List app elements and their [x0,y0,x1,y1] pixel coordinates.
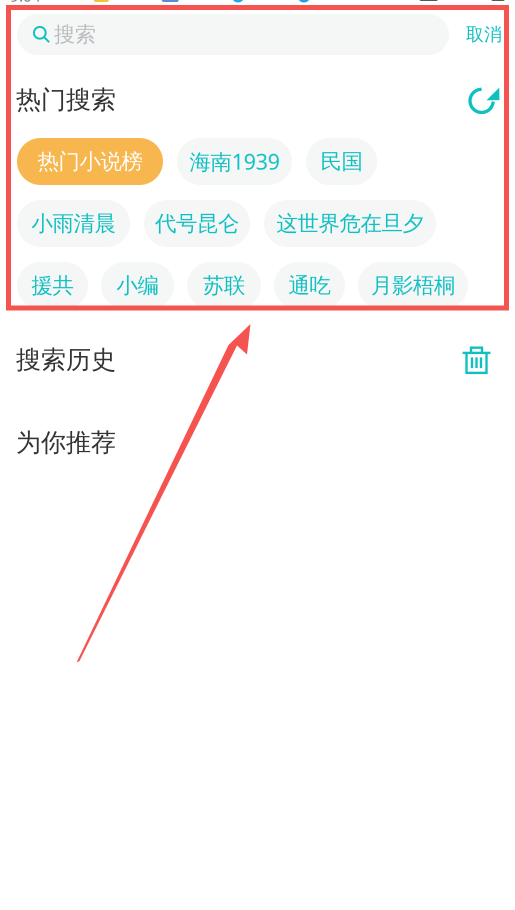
staticText: 为你推荐 [16,427,116,458]
staticText: 取消 [466,23,502,46]
button[interactable]: 这世界危在旦夕 [264,200,436,247]
button[interactable]: 通吃 [274,262,345,309]
staticText: 热门搜索 [16,84,116,116]
staticText: 小雨清晨 [31,210,115,237]
button[interactable]: 海南1939 [177,138,292,185]
staticText: 9:04 [10,0,41,6]
button[interactable]: 小编 [101,262,174,309]
staticText: 代号昆仑 [155,210,239,237]
staticText: 海南1939 [189,147,279,176]
staticText: 搜索 [54,21,96,48]
button[interactable]: 代号昆仑 [144,200,250,247]
staticText: 通吃 [288,272,330,299]
staticText: 月影梧桐 [371,272,455,299]
staticText: 苏联 [203,272,245,299]
button[interactable]: 民国 [306,138,377,185]
staticText: 这世界危在旦夕 [276,210,423,237]
button[interactable]: 小雨清晨 [17,200,130,247]
staticText: 搜索历史 [16,344,116,376]
staticText: 民国 [320,148,362,175]
button[interactable]: 月影梧桐 [358,262,468,309]
button[interactable]: 取消 [465,14,503,55]
button[interactable]: 苏联 [187,262,261,309]
button[interactable]: Clear search history [462,345,491,374]
button[interactable]: Refresh [470,85,499,114]
staticText: 热门小说榜 [37,148,142,175]
staticText: 援共 [31,272,73,299]
button[interactable]: 援共 [17,262,88,309]
button[interactable]: 热门小说榜 [17,138,163,185]
staticText: 小编 [116,272,158,299]
